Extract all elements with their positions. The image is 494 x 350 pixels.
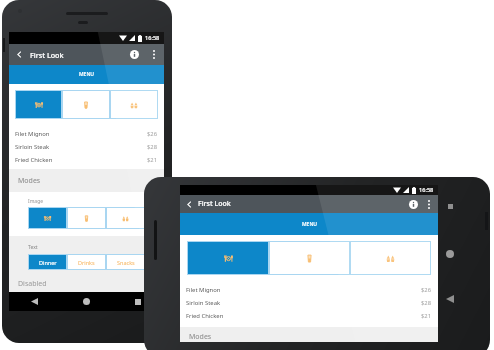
button[interactable]: Filet Mignon: [180, 283, 438, 296]
button[interactable]: Dinner: [15, 90, 62, 119]
button[interactable]: Filet Mignon: [9, 127, 164, 140]
button[interactable]: Dinner: [28, 254, 67, 270]
staticText: Text: [28, 244, 38, 251]
button[interactable]: Drinks: [67, 254, 106, 270]
button[interactable]: Sirloin Steak: [9, 140, 164, 153]
button[interactable]: Back: [180, 195, 198, 213]
button[interactable]: Dinner: [187, 241, 269, 275]
staticText: $21: [421, 312, 432, 320]
button[interactable]: Recents: [112, 292, 164, 311]
button[interactable]: More options: [145, 44, 162, 65]
button[interactable]: Fried Chicken: [180, 309, 438, 322]
button[interactable]: Home: [60, 292, 112, 311]
staticText: Fried Chicken: [15, 156, 53, 164]
staticText: Snacks: [117, 259, 135, 266]
button[interactable]: Drinks: [62, 90, 110, 119]
staticText: Image: [28, 198, 44, 205]
button[interactable]: Info: [124, 44, 145, 65]
button[interactable]: MENU: [9, 65, 164, 84]
staticText: Dinner: [39, 259, 57, 266]
staticText: $21: [147, 156, 158, 164]
staticText: Filet Mignon: [186, 286, 221, 294]
staticText: MENU: [79, 71, 94, 78]
staticText: First Look: [30, 50, 64, 60]
staticText: First Look: [198, 199, 231, 209]
staticText: Modes: [189, 332, 212, 342]
button[interactable]: Info: [404, 195, 422, 213]
staticText: $28: [147, 143, 158, 151]
button[interactable]: Back: [9, 44, 30, 65]
button[interactable]: Back: [9, 292, 60, 311]
staticText: MENU: [302, 221, 317, 228]
staticText: Modes: [18, 176, 41, 186]
button[interactable]: Snacks: [110, 90, 158, 119]
staticText: Filet Mignon: [15, 130, 50, 138]
button[interactable]: More options: [422, 195, 436, 213]
staticText: Disabled: [18, 279, 47, 289]
button[interactable]: Snacks: [106, 207, 145, 229]
button[interactable]: Dinner: [28, 207, 67, 229]
staticText: Fried Chicken: [186, 312, 224, 320]
staticText: $26: [421, 286, 432, 294]
button[interactable]: Drinks: [269, 241, 350, 275]
staticText: Drinks: [78, 259, 95, 266]
staticText: Sirloin Steak: [186, 299, 221, 307]
staticText: 16:58: [419, 186, 434, 194]
button[interactable]: MENU: [180, 213, 438, 235]
button[interactable]: Snacks: [106, 254, 145, 270]
staticText: $26: [147, 130, 158, 138]
button[interactable]: Snacks: [350, 241, 431, 275]
staticText: 16:58: [145, 34, 160, 42]
button[interactable]: Fried Chicken: [9, 153, 164, 166]
staticText: Sirloin Steak: [15, 143, 50, 151]
button[interactable]: Sirloin Steak: [180, 296, 438, 309]
button[interactable]: Drinks: [67, 207, 106, 229]
staticText: $28: [421, 299, 432, 307]
